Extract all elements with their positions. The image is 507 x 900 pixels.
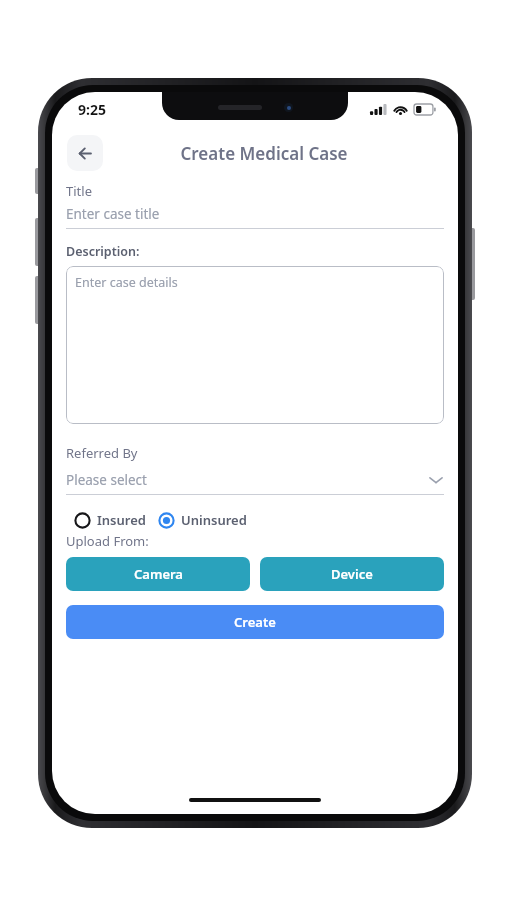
staticText: Referred By: [66, 444, 138, 462]
button[interactable]: Enter case details: [66, 266, 444, 424]
staticText: Please select: [66, 471, 147, 489]
staticText: Uninsured: [181, 511, 247, 529]
staticText: Description:: [66, 243, 140, 260]
staticText: Device: [331, 565, 373, 583]
button[interactable]: Create: [66, 605, 444, 639]
staticText: Enter case details: [75, 274, 178, 291]
staticText: Create: [234, 613, 276, 631]
staticText: 9:25: [78, 100, 106, 119]
staticText: Title: [66, 182, 92, 200]
button[interactable]: Device: [260, 557, 444, 591]
staticText: Upload From:: [66, 532, 149, 550]
staticText: Insured: [97, 511, 146, 529]
button[interactable]: Please select: [66, 471, 444, 489]
button[interactable]: Uninsured: [158, 511, 247, 529]
staticText: Enter case title: [66, 205, 160, 223]
button[interactable]: Back: [67, 135, 103, 171]
button[interactable]: Insured: [74, 511, 146, 529]
staticText: Camera: [134, 565, 183, 583]
button[interactable]: Camera: [66, 557, 250, 591]
other: Open dropdown: [428, 472, 444, 488]
staticText: Create Medical Case: [180, 142, 348, 165]
